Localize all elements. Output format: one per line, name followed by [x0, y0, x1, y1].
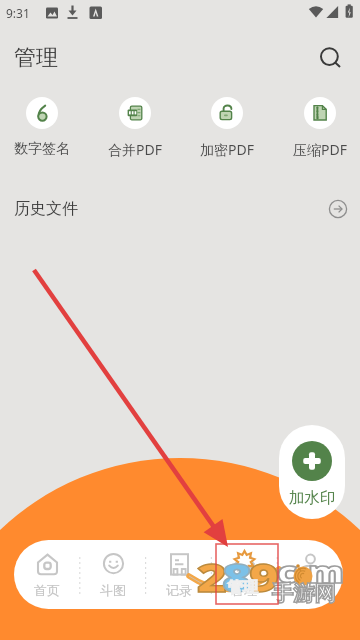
button[interactable]: 首页	[14, 540, 80, 609]
staticText: 我的	[297, 582, 323, 598]
staticText: 合并PDF	[108, 140, 162, 159]
staticText: 管理	[231, 582, 257, 598]
staticText: 手游网	[272, 581, 336, 606]
staticText: 8	[222, 551, 253, 603]
staticText: 8	[222, 551, 253, 603]
staticText: c	[277, 551, 298, 592]
button[interactable]: 加密PDF	[182, 97, 272, 159]
staticText: 斗图	[100, 582, 126, 598]
button[interactable]: 历史文件	[0, 190, 360, 228]
staticText: c	[277, 551, 298, 592]
staticText: 2	[197, 551, 228, 603]
staticText: 手游网	[272, 581, 336, 606]
staticText: 加密PDF	[200, 140, 254, 159]
staticText: 9	[249, 551, 280, 603]
button[interactable]: 管理	[211, 540, 277, 609]
button[interactable]: Search	[314, 41, 348, 75]
button[interactable]: 合并PDF	[90, 97, 180, 159]
staticText: 管理	[228, 578, 258, 597]
staticText: 首页	[34, 582, 60, 598]
button[interactable]: 加水印	[279, 425, 345, 519]
staticText: 历史文件	[14, 199, 78, 219]
staticText: 加水印	[289, 488, 336, 508]
staticText: 记录	[166, 582, 192, 598]
staticText: 管理	[228, 578, 258, 597]
button[interactable]: 记录	[146, 540, 212, 609]
button[interactable]: 压缩PDF	[275, 97, 360, 159]
staticText: 9	[249, 551, 280, 603]
staticText: 9:31	[6, 5, 30, 21]
button[interactable]: 数字签名	[0, 97, 87, 158]
staticText: 数字签名	[14, 140, 70, 158]
staticText: m	[308, 551, 344, 592]
staticText: 压缩PDF	[293, 140, 347, 159]
button[interactable]: 我的	[277, 540, 343, 609]
button[interactable]: 斗图	[80, 540, 146, 609]
staticText: m	[308, 551, 344, 592]
staticText: 2	[197, 551, 228, 603]
staticText: 管理	[14, 44, 58, 72]
